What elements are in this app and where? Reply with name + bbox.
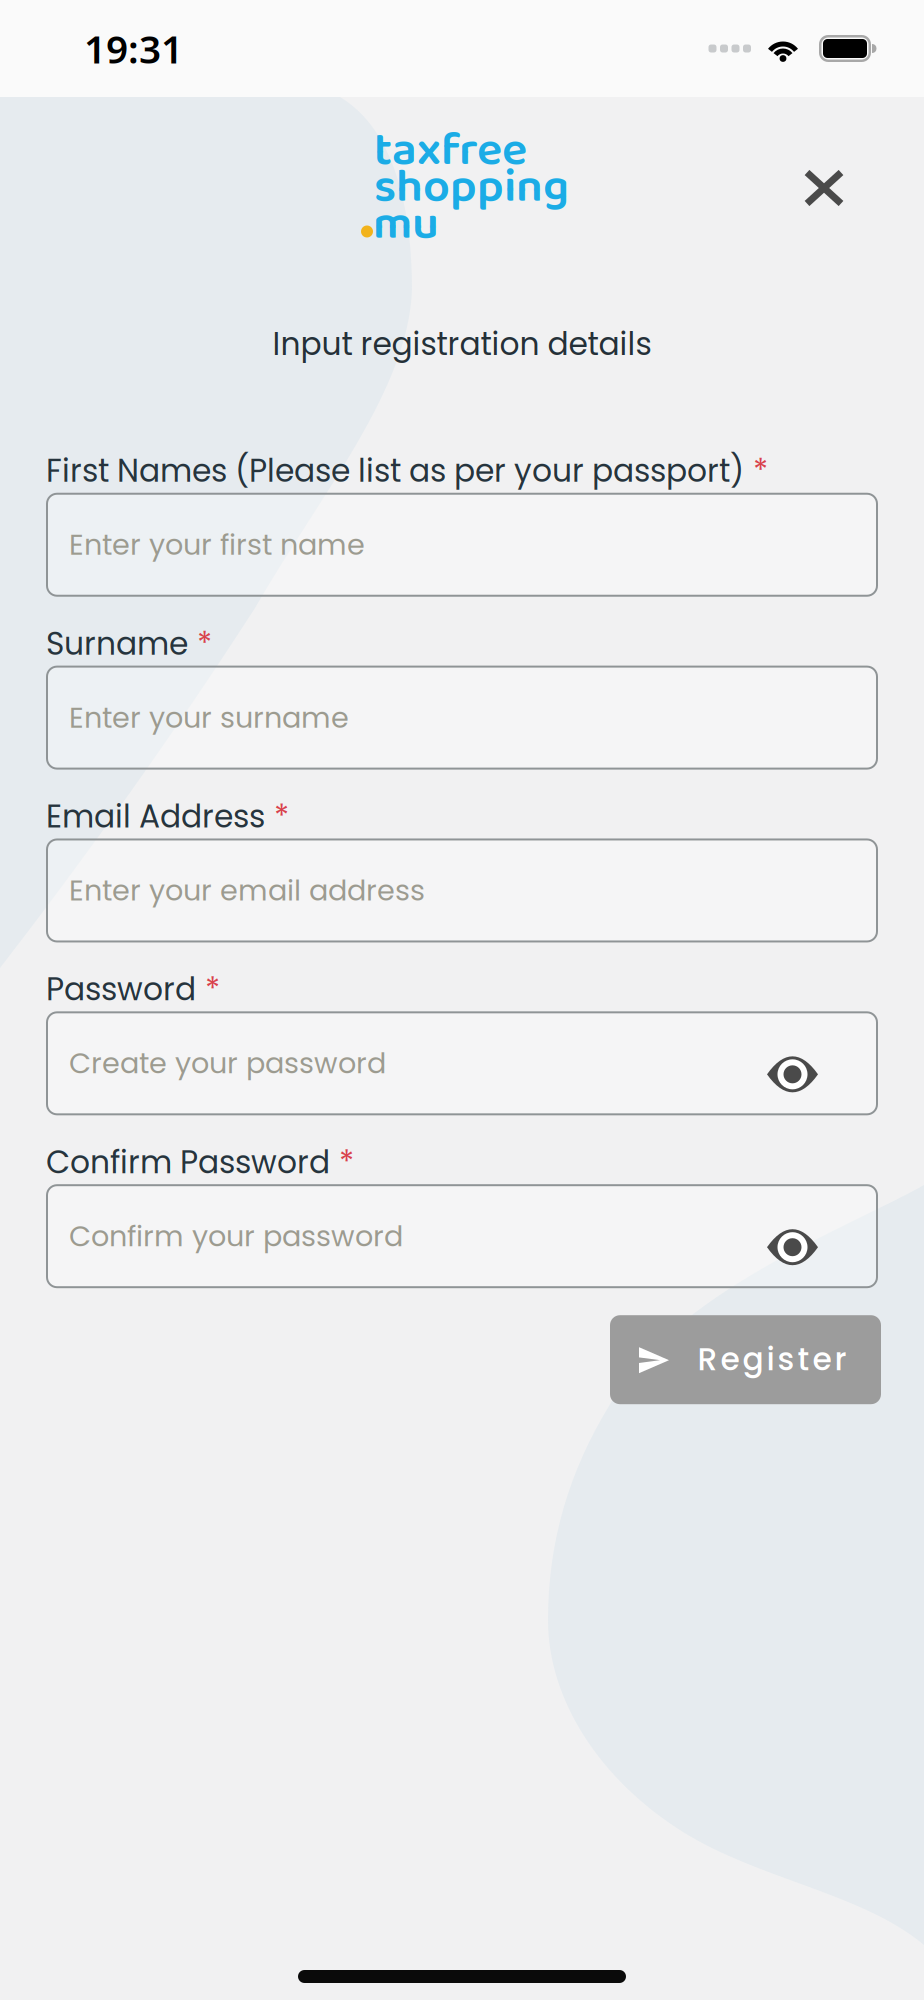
button[interactable]: Show password — [767, 1230, 818, 1264]
button[interactable]: Show password — [767, 1057, 818, 1091]
staticText: * — [197, 622, 212, 666]
staticText: Register — [697, 1337, 846, 1381]
staticText: * — [753, 449, 768, 493]
staticText: mu — [373, 187, 439, 262]
textField[interactable]: Enter your first name — [69, 525, 855, 565]
staticText: taxfree — [374, 113, 527, 189]
secureTextField[interactable]: Create your password — [69, 1043, 767, 1083]
textField[interactable]: Enter your surname — [69, 697, 855, 738]
staticText: First Names (Please list as per your pas… — [46, 449, 744, 493]
staticText: Password — [46, 967, 196, 1011]
staticText: Create your password — [69, 1043, 386, 1083]
staticText: Confirm Password — [46, 1140, 330, 1184]
staticText: 19:31 — [84, 23, 183, 74]
secureTextField[interactable]: Confirm your password — [69, 1216, 767, 1256]
textField[interactable]: Enter your email address — [69, 870, 855, 910]
button[interactable]: Close — [795, 160, 853, 215]
staticText: Surname — [46, 622, 188, 666]
staticText: * — [205, 967, 220, 1011]
staticText: * — [339, 1140, 354, 1184]
staticText: Enter your first name — [69, 525, 365, 565]
staticText: Enter your surname — [69, 697, 349, 738]
staticText: Enter your email address — [69, 870, 425, 910]
staticText: * — [274, 795, 289, 838]
button[interactable]: Register — [610, 1315, 881, 1404]
staticText: Confirm your password — [69, 1216, 403, 1256]
staticText: Email Address — [46, 795, 265, 838]
staticText: Input registration details — [272, 322, 651, 366]
staticText: shopping — [374, 150, 569, 226]
